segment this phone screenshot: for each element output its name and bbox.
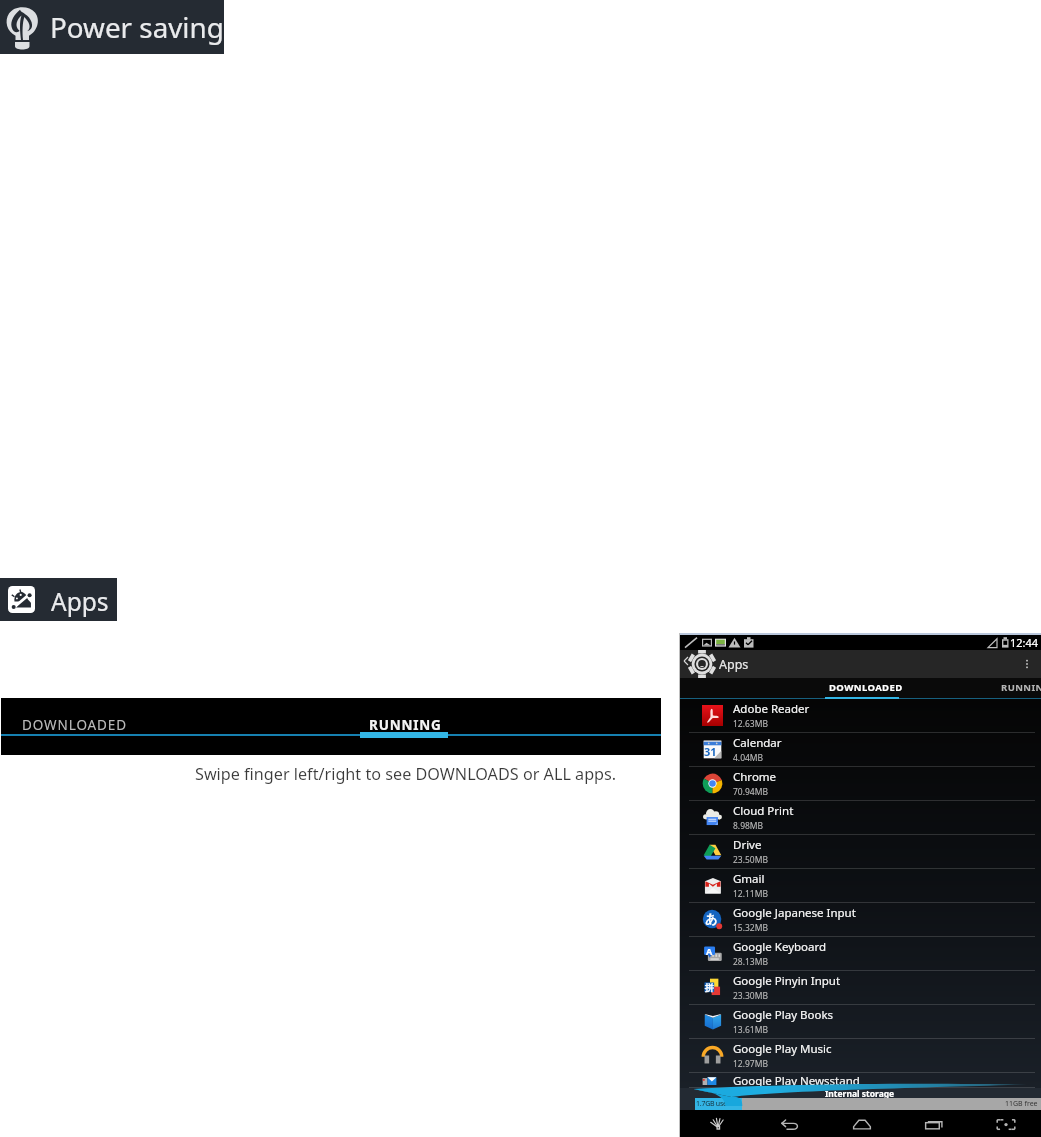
staticText: Google Pinyin Input	[733, 973, 841, 989]
button[interactable]: Adobe Reader	[679, 699, 1041, 733]
button[interactable]: A	[679, 937, 1041, 971]
staticText: Gmail	[733, 871, 765, 887]
staticText: Calendar	[733, 735, 782, 751]
staticText: 12.97MB	[733, 1058, 768, 1070]
button[interactable]: Google Play Newsstand	[679, 1073, 1041, 1088]
staticText: 12.63MB	[733, 718, 768, 730]
button[interactable]: Back	[779, 1113, 801, 1135]
staticText: Google Play Books	[733, 1007, 834, 1023]
staticText: あ	[705, 911, 718, 926]
staticText: Swipe finger left/right to see DOWNLOADS…	[195, 763, 617, 785]
button[interactable]: Recents	[923, 1113, 945, 1135]
button[interactable]: Home	[851, 1113, 873, 1135]
staticText: 12.11MB	[733, 888, 768, 900]
staticText: 13.61MB	[733, 1024, 768, 1036]
button[interactable]: Chrome	[679, 767, 1041, 801]
staticText: 15.32MB	[733, 922, 768, 934]
staticText: Google Play Music	[733, 1041, 832, 1057]
button[interactable]: 拼	[679, 971, 1041, 1005]
staticText: 1.7GB used	[696, 1099, 731, 1109]
staticText: Drive	[733, 837, 762, 853]
button[interactable]: Google Play Music	[679, 1039, 1041, 1073]
button[interactable]: Screenshot	[707, 1113, 729, 1135]
staticText: 拼	[705, 982, 714, 993]
staticText: Google Keyboard	[733, 939, 827, 955]
staticText: 12:44	[1010, 635, 1039, 650]
staticText: 23.30MB	[733, 990, 768, 1002]
button[interactable]: 31	[679, 733, 1041, 767]
staticText: Apps	[719, 656, 749, 673]
button[interactable]: Apps	[0, 578, 117, 621]
staticText: 8.98MB	[733, 820, 764, 832]
staticText: Power saving	[50, 8, 224, 46]
staticText: 28.13MB	[733, 956, 768, 968]
staticText: A	[706, 945, 713, 957]
staticText: Cloud Print	[733, 803, 794, 819]
staticText: 70.94MB	[733, 786, 768, 798]
button[interactable]: More options	[1019, 656, 1035, 672]
staticText: 4.04MB	[733, 752, 764, 764]
staticText: Apps	[51, 585, 109, 618]
staticText: Adobe Reader	[733, 701, 810, 717]
button[interactable]: Power saving	[0, 0, 224, 54]
staticText: DOWNLOADED	[829, 681, 903, 694]
staticText: 11GB free	[1005, 1099, 1038, 1109]
staticText: Google Japanese Input	[733, 905, 856, 921]
button[interactable]: Cloud Print	[679, 801, 1041, 835]
button[interactable]: Drive	[679, 835, 1041, 869]
button[interactable]: あ	[679, 903, 1041, 937]
staticText: Chrome	[733, 769, 777, 785]
staticText: DOWNLOADED	[22, 716, 127, 734]
staticText: Google Play Newsstand	[733, 1073, 860, 1088]
staticText: 23.50MB	[733, 854, 768, 866]
button[interactable]: Screen capture	[995, 1113, 1017, 1135]
staticText: RUNNING	[1001, 681, 1041, 694]
staticText: 31	[704, 744, 717, 759]
button[interactable]: Gmail	[679, 869, 1041, 903]
button[interactable]: Google Play Books	[679, 1005, 1041, 1039]
staticText: Internal storage	[825, 1088, 895, 1100]
staticText: RUNNING	[369, 716, 442, 734]
